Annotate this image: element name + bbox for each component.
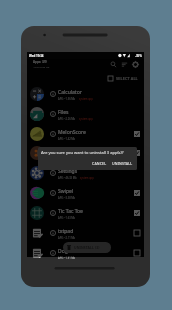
staticText: APK: ~1.91 Mb bbox=[58, 256, 76, 259]
button[interactable]: Tic Tac Toe bbox=[27, 203, 144, 223]
staticText: -35% bbox=[135, 54, 142, 58]
staticText: txtpad bbox=[58, 228, 74, 235]
staticText: Settings bbox=[58, 168, 78, 175]
staticText: Wed 19:34 bbox=[29, 54, 44, 58]
button[interactable]: MelonScore bbox=[27, 124, 144, 144]
button[interactable]: SELECT ALL bbox=[108, 76, 138, 81]
staticText: system app bbox=[79, 97, 93, 100]
button[interactable]: Settings bbox=[27, 163, 144, 183]
button[interactable]: Select Dogtail bbox=[134, 250, 140, 256]
staticText: APK: ~2.26 Mb bbox=[58, 117, 76, 120]
staticText: Tic Tac Toe bbox=[58, 208, 83, 215]
staticText: Calculator bbox=[58, 89, 82, 96]
staticText: APK: ~3.38 Mb bbox=[58, 196, 76, 199]
staticText: ~0.07/3.85 Gb bbox=[33, 65, 50, 68]
staticText: UNINSTALL (3) bbox=[74, 245, 100, 250]
staticText: Swipel bbox=[58, 188, 74, 195]
button[interactable]: Settings bbox=[132, 61, 139, 68]
staticText: APK: ~1.56 Mb bbox=[58, 97, 76, 100]
staticText: system app bbox=[79, 117, 93, 120]
button[interactable]: UNINSTALL (3) bbox=[63, 242, 111, 253]
button[interactable]: Select Swipel bbox=[134, 190, 140, 196]
staticText: APK: ~2.11 Mb bbox=[58, 236, 76, 239]
button[interactable]: Sort bbox=[121, 61, 128, 68]
button[interactable]: Swipel bbox=[27, 183, 144, 203]
staticText: UNINSTALL bbox=[112, 161, 133, 166]
button[interactable]: Select Tic Tac Toe bbox=[134, 210, 140, 216]
button[interactable]: Calculator bbox=[27, 84, 144, 104]
button[interactable]: Search bbox=[110, 61, 117, 68]
staticText: system app bbox=[80, 176, 94, 179]
button[interactable]: txtpad bbox=[27, 223, 144, 243]
staticText: SELECT ALL bbox=[116, 76, 138, 81]
staticText: APK: ~1.42 Mb bbox=[58, 137, 76, 140]
staticText: Dogtail bbox=[58, 248, 75, 255]
button[interactable]: Paint bbox=[27, 143, 144, 163]
staticText: Paint bbox=[58, 148, 71, 155]
staticText: Files bbox=[58, 109, 69, 116]
staticText: APK: ~1.63 Mb bbox=[58, 216, 76, 219]
staticText: Apps: 3/9 bbox=[33, 60, 47, 64]
staticText: CANCEL bbox=[92, 161, 107, 166]
button[interactable]: CANCEL bbox=[91, 160, 108, 167]
staticText: MelonScore bbox=[58, 129, 86, 136]
button[interactable]: Select txtpad bbox=[134, 230, 140, 236]
staticText: Are you sure you want to uninstall 3 app… bbox=[41, 150, 124, 156]
button[interactable]: Dogtail bbox=[27, 243, 144, 263]
button[interactable]: Select MelonScore bbox=[134, 131, 140, 137]
button[interactable]: Files bbox=[27, 104, 144, 124]
button[interactable]: Select Paint bbox=[134, 150, 140, 156]
staticText: APK: ~46.33 Mb bbox=[58, 176, 77, 179]
button[interactable]: UNINSTALL bbox=[111, 160, 134, 167]
